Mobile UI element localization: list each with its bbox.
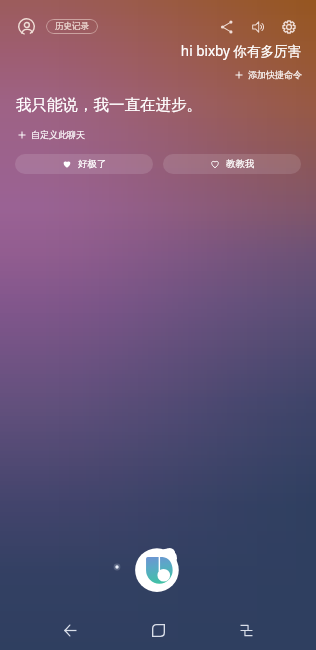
staticText: 历史记录 xyxy=(55,21,89,32)
button[interactable]: Volume xyxy=(242,11,273,42)
button[interactable]: 教教我 xyxy=(163,154,301,174)
button[interactable]: Settings xyxy=(273,11,304,42)
button[interactable]: Back xyxy=(26,610,114,650)
button[interactable]: Recent apps xyxy=(202,610,290,650)
staticText: 自定义此聊天 xyxy=(31,129,85,140)
staticText: 好极了 xyxy=(78,158,107,170)
button[interactable]: 好极了 xyxy=(15,154,153,174)
staticText: 添加快捷命令 xyxy=(248,69,302,80)
staticText: hi bixby 你有多厉害 xyxy=(0,42,301,60)
button[interactable]: 历史记录 xyxy=(46,19,98,34)
button[interactable]: 添加快捷命令 xyxy=(235,68,302,81)
staticText: 我只能说，我一直在进步。 xyxy=(16,95,202,115)
button[interactable]: Share xyxy=(211,11,242,42)
button[interactable]: 自定义此聊天 xyxy=(18,128,85,141)
staticText: 教教我 xyxy=(226,158,255,170)
button[interactable]: Profile xyxy=(14,14,38,38)
button[interactable]: Bixby xyxy=(134,545,182,593)
button[interactable]: Home xyxy=(114,610,202,650)
